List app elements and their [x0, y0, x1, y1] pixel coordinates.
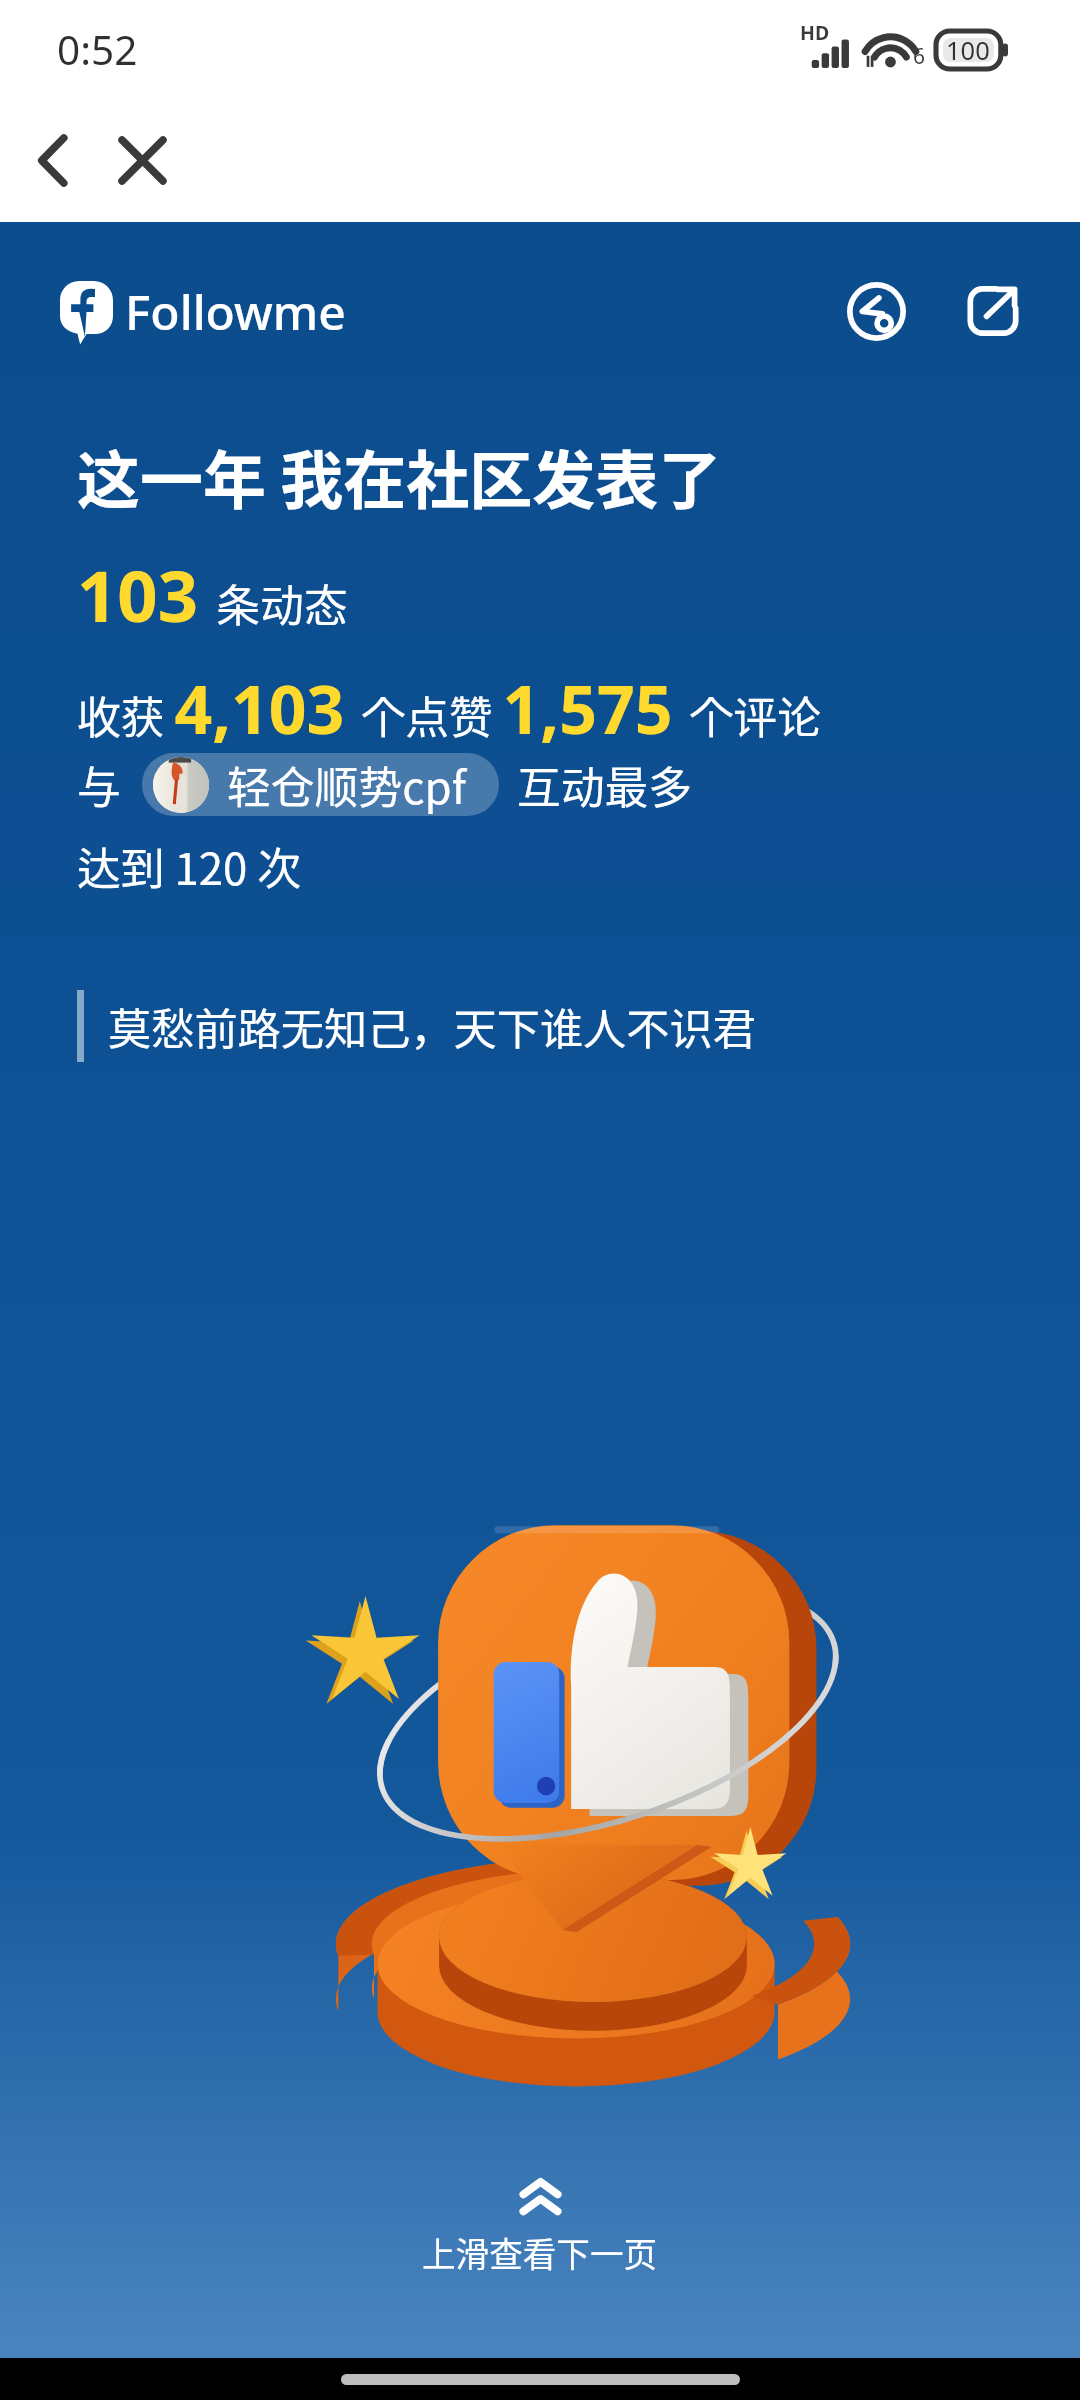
button[interactable]: 轻仓顺势cpf: [142, 753, 499, 816]
staticText: 轻仓顺势cpf: [227, 753, 466, 816]
staticText: 莫愁前路无知己，天下谁人不识君: [108, 995, 756, 1058]
staticText: 100: [946, 33, 990, 68]
staticText: 103 条动态: [77, 547, 348, 643]
staticText: 收获 4,103 个点赞 1,575 个评论: [77, 663, 821, 753]
staticText: 0:52: [57, 22, 138, 77]
staticText: Followme: [125, 279, 346, 344]
staticText: HD: [800, 19, 830, 46]
button[interactable]: Share: [942, 260, 1044, 362]
staticText: 与: [77, 753, 121, 816]
staticText: 达到 120 次: [77, 834, 301, 897]
button[interactable]: Close: [99, 117, 186, 204]
staticText: 6: [913, 42, 926, 71]
staticText: 这一年 我在社区发表了: [77, 430, 722, 521]
staticText: 互动最多: [517, 753, 693, 816]
staticText: 上滑查看下一页: [422, 2228, 658, 2277]
button[interactable]: Back: [9, 117, 96, 204]
button[interactable]: Music: [825, 260, 927, 362]
